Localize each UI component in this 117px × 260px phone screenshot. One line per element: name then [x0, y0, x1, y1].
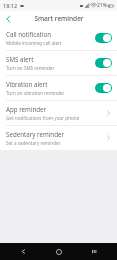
staticText: Get notifications from your phone — [6, 115, 80, 121]
button[interactable]: Back — [0, 11, 16, 26]
staticText: App reminder — [6, 105, 47, 113]
button[interactable]: Toggle on — [95, 83, 112, 93]
button[interactable]: Back — [11, 243, 35, 260]
button[interactable]: Recents — [82, 243, 106, 260]
staticText: 18:12 — [3, 2, 18, 9]
button[interactable]: Toggle on — [95, 33, 112, 43]
staticText: Mobile incoming call alert — [6, 40, 62, 46]
button[interactable]: App reminder — [0, 101, 117, 125]
staticText: SMS alert — [6, 55, 34, 63]
button[interactable]: Vibration alert — [0, 76, 117, 100]
staticText: Vibration alert — [6, 80, 48, 88]
staticText: Sedentary reminder — [6, 130, 65, 138]
button[interactable]: SMS alert — [0, 51, 117, 75]
other: Open — [105, 133, 112, 143]
button[interactable]: Home — [47, 243, 71, 260]
button[interactable]: Toggle on — [95, 58, 112, 68]
staticText: Set a sedentary reminder — [6, 140, 61, 146]
other: Open — [105, 108, 112, 118]
button[interactable]: Sedentary reminder — [0, 126, 117, 150]
staticText: Smart reminder — [34, 14, 84, 23]
button[interactable]: Call notification — [0, 26, 117, 50]
staticText: Call notification — [6, 30, 52, 38]
staticText: Turn on SMS reminder — [6, 65, 55, 71]
staticText: 21% — [97, 2, 107, 9]
staticText: Turn on vibration reminder — [6, 90, 65, 96]
